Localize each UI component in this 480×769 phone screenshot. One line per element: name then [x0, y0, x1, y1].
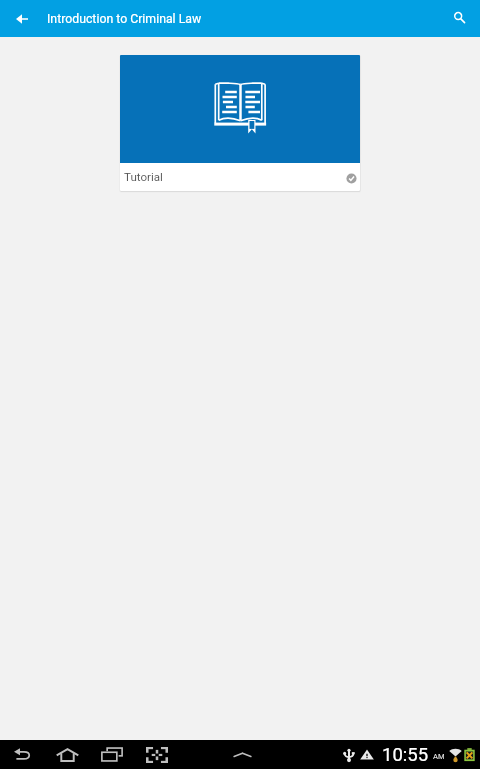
button[interactable]: Home — [53, 740, 81, 769]
button[interactable]: Recent apps — [98, 740, 126, 769]
staticText: AM — [433, 752, 445, 761]
staticText: 10:55 — [382, 744, 429, 766]
button[interactable]: Tutorial — [120, 55, 360, 191]
staticText: Introduction to Criminal Law — [47, 12, 202, 26]
button[interactable]: Search — [439, 0, 477, 37]
button[interactable]: Expand notifications — [228, 740, 256, 769]
button[interactable]: Back — [0, 0, 38, 37]
button[interactable]: Screenshot — [143, 740, 171, 769]
button[interactable]: Back — [8, 740, 36, 769]
staticText: Tutorial — [124, 170, 163, 184]
